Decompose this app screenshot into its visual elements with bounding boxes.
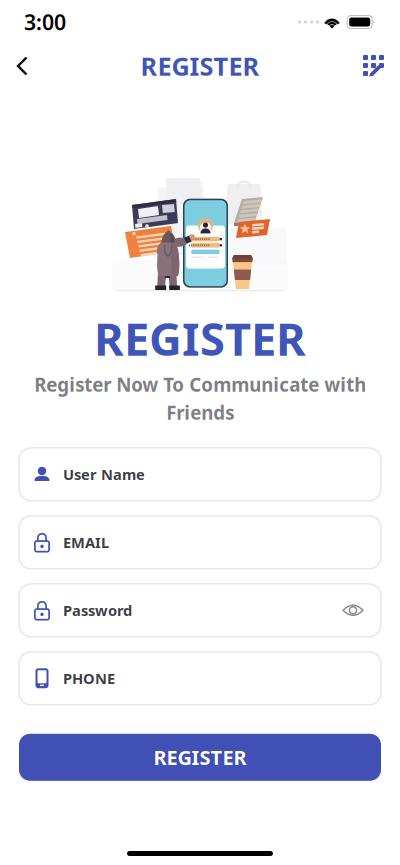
button[interactable]: Edit xyxy=(344,46,384,86)
staticText: 3:00 xyxy=(24,8,66,36)
staticText: PHONE xyxy=(63,668,115,688)
staticText: User Name xyxy=(63,464,145,484)
staticText: REGISTER xyxy=(140,49,259,83)
staticText: Register Now To Communicate with Friends xyxy=(34,372,366,425)
staticText: Password xyxy=(63,600,132,620)
button[interactable]: Back xyxy=(16,46,56,86)
button[interactable]: Show password xyxy=(333,590,373,630)
button[interactable]: REGISTER xyxy=(19,734,381,781)
staticText: EMAIL xyxy=(63,532,109,552)
staticText: REGISTER xyxy=(153,744,246,771)
staticText: REGISTER xyxy=(94,308,306,368)
